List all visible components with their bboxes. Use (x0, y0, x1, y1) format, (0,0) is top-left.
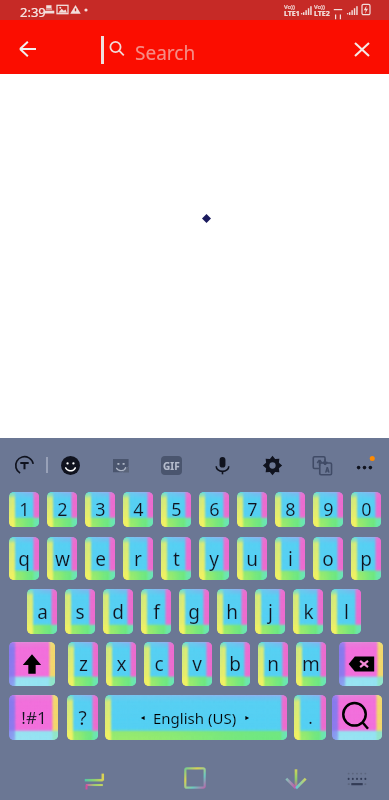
button[interactable]: e (85, 537, 115, 580)
button[interactable]: y (199, 537, 229, 580)
staticText: n (267, 651, 279, 677)
staticText: Vo)) (314, 3, 325, 11)
staticText: h (226, 599, 238, 625)
button[interactable]: Transliterate (3, 444, 45, 486)
staticText: x (116, 651, 127, 677)
button[interactable]: 0 (351, 492, 381, 527)
button[interactable]: m (296, 642, 326, 686)
button[interactable]: d (103, 589, 133, 634)
staticText: 3 (95, 497, 106, 522)
staticText: j (268, 599, 273, 625)
button[interactable]: Hide keyboard (272, 757, 320, 800)
button[interactable]: 2 (47, 492, 77, 527)
button[interactable]: v (182, 642, 212, 686)
staticText: r (134, 546, 142, 572)
button[interactable]: ? (67, 695, 98, 740)
button[interactable]: i (275, 537, 305, 580)
staticText: 2 (57, 497, 68, 522)
staticText: 2:39 (20, 3, 46, 21)
button[interactable]: More options (343, 444, 385, 486)
staticText: LTE1 (284, 9, 300, 19)
staticText: 5 (171, 497, 182, 522)
button[interactable]: Emoji (49, 444, 91, 486)
staticText: y (209, 546, 219, 572)
button[interactable]: GIF (150, 444, 192, 486)
staticText: o (322, 546, 334, 572)
button[interactable]: Search (108, 40, 125, 57)
button[interactable]: b (220, 642, 250, 686)
button[interactable]: 7 (237, 492, 267, 527)
button[interactable]: key (339, 642, 383, 686)
button[interactable]: 5 (161, 492, 191, 527)
button[interactable]: o (313, 537, 343, 580)
button[interactable]: x (106, 642, 136, 686)
staticText: b (229, 651, 241, 677)
button[interactable]: Back (70, 756, 118, 800)
button[interactable]: z (68, 642, 98, 686)
staticText: i (288, 546, 293, 572)
button[interactable]: p (351, 537, 381, 580)
button[interactable]: j (255, 589, 285, 634)
button[interactable]: k (293, 589, 323, 634)
staticText: f (153, 599, 160, 625)
staticText: s (75, 599, 85, 625)
staticText: 0 (361, 497, 372, 522)
button[interactable]: 4 (123, 492, 153, 527)
button[interactable]: f (141, 589, 171, 634)
button[interactable]: 6 (199, 492, 229, 527)
staticText: Search (135, 40, 196, 66)
button[interactable]: key (332, 695, 382, 740)
button[interactable]: Translate (301, 444, 343, 486)
staticText: GIF (163, 459, 180, 473)
button[interactable]: g (179, 589, 209, 634)
button[interactable]: key (105, 695, 287, 740)
button[interactable]: 8 (275, 492, 305, 527)
button[interactable]: s (65, 589, 95, 634)
button[interactable]: w (47, 537, 77, 580)
button[interactable]: l (331, 589, 361, 634)
staticText: c (154, 651, 164, 677)
button[interactable]: c (144, 642, 174, 686)
button[interactable]: 1 (9, 492, 39, 527)
staticText: . (308, 706, 313, 729)
staticText: l (344, 599, 349, 625)
button[interactable]: q (9, 537, 39, 580)
button[interactable]: h (217, 589, 247, 634)
staticText: Vo)) (284, 3, 295, 11)
button[interactable]: !#1 (9, 695, 58, 740)
button[interactable]: u (237, 537, 267, 580)
button[interactable]: key (9, 642, 55, 686)
staticText: d (112, 599, 124, 625)
staticText: ? (78, 705, 87, 731)
button[interactable]: t (161, 537, 191, 580)
staticText: t (173, 546, 180, 572)
button[interactable]: Sticker (100, 444, 142, 486)
staticText: p (360, 546, 372, 572)
staticText: 8 (285, 497, 296, 522)
staticText: 6 (209, 497, 220, 522)
button[interactable]: Switch keyboard (333, 756, 381, 800)
button[interactable]: 3 (85, 492, 115, 527)
staticText: !#1 (21, 706, 47, 729)
staticText: LTE2 (314, 9, 330, 19)
button[interactable]: n (258, 642, 288, 686)
staticText: u (246, 546, 258, 572)
button[interactable]: Recents (171, 756, 219, 800)
button[interactable]: Back (7, 29, 47, 69)
button[interactable]: . (294, 695, 326, 740)
staticText: k (303, 599, 314, 625)
staticText: g (188, 599, 200, 625)
staticText: v (192, 651, 202, 677)
button[interactable]: Close (344, 31, 380, 67)
button[interactable]: 9 (313, 492, 343, 527)
staticText: English (US) (153, 708, 237, 728)
button[interactable]: Settings (251, 444, 293, 486)
staticText: q (18, 546, 30, 572)
button[interactable]: r (123, 537, 153, 580)
staticText: m (302, 651, 320, 677)
staticText: 1 (19, 497, 30, 522)
button[interactable]: a (27, 589, 57, 634)
staticText: 7 (247, 497, 258, 522)
button[interactable]: Voice input (201, 444, 243, 486)
staticText: z (79, 651, 88, 677)
